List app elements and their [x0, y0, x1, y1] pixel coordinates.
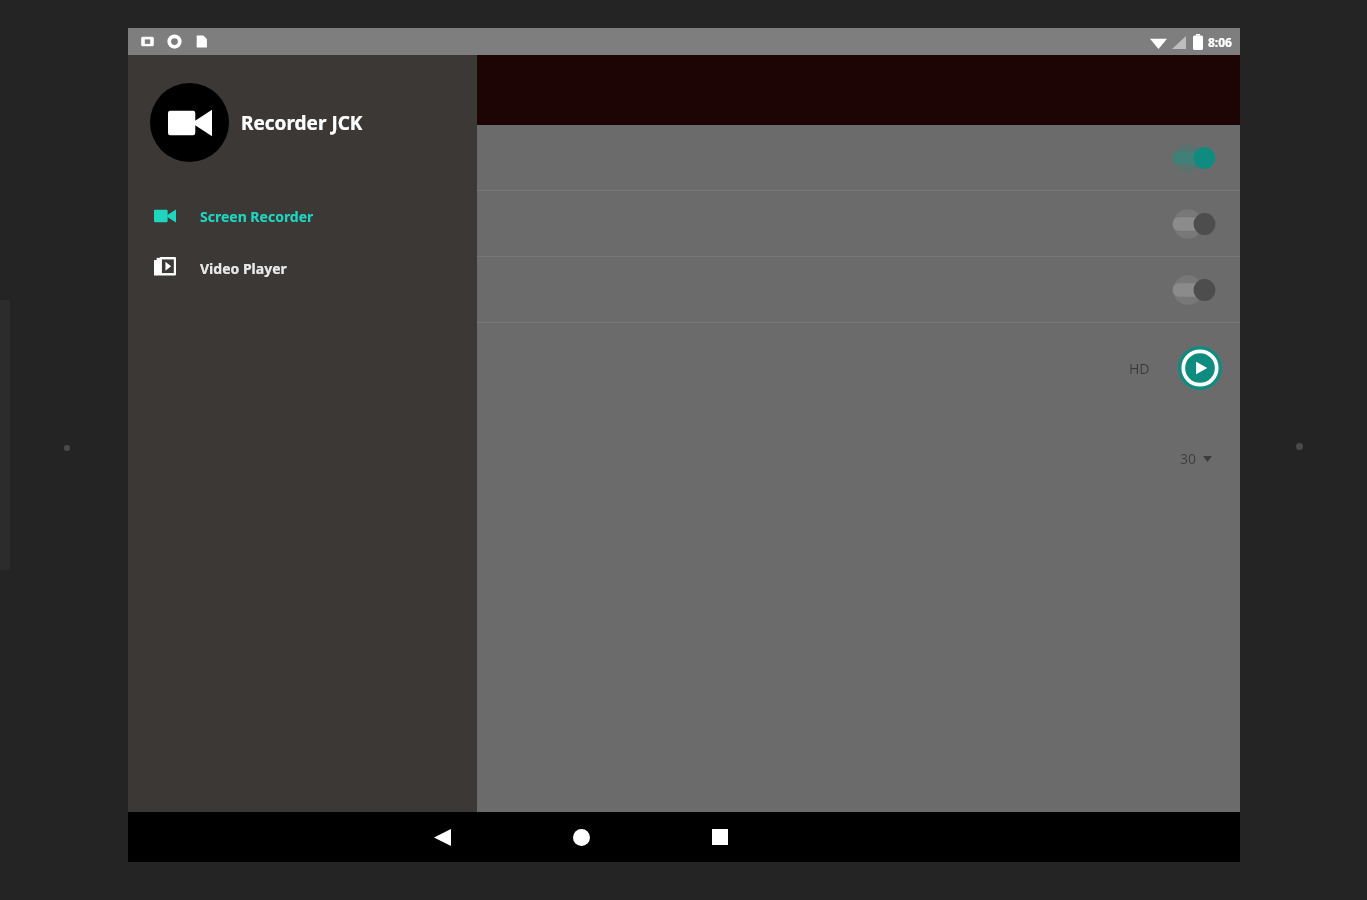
staticText: Recorder JCK: [241, 110, 363, 136]
button[interactable]: Toggle off: [128, 257, 1240, 322]
button[interactable]: Screen Recorder: [128, 190, 477, 242]
button[interactable]: Start recording: [1178, 346, 1222, 390]
button[interactable]: Toggle off: [1166, 208, 1218, 240]
staticText: 8:06: [1208, 34, 1232, 50]
staticText: HD: [1129, 359, 1150, 378]
button[interactable]: Toggle on: [128, 125, 1240, 190]
button[interactable]: Back: [412, 812, 472, 862]
staticText: Video Player: [200, 259, 287, 278]
staticText: Screen Recorder: [200, 207, 314, 226]
button[interactable]: Home: [551, 812, 611, 862]
staticText: 30: [1180, 449, 1197, 468]
button[interactable]: Toggle off: [1166, 274, 1218, 306]
button[interactable]: Toggle on: [1166, 142, 1218, 174]
button[interactable]: Toggle off: [128, 191, 1240, 256]
button[interactable]: Video Player: [128, 242, 477, 294]
button[interactable]: Recents: [690, 812, 750, 862]
